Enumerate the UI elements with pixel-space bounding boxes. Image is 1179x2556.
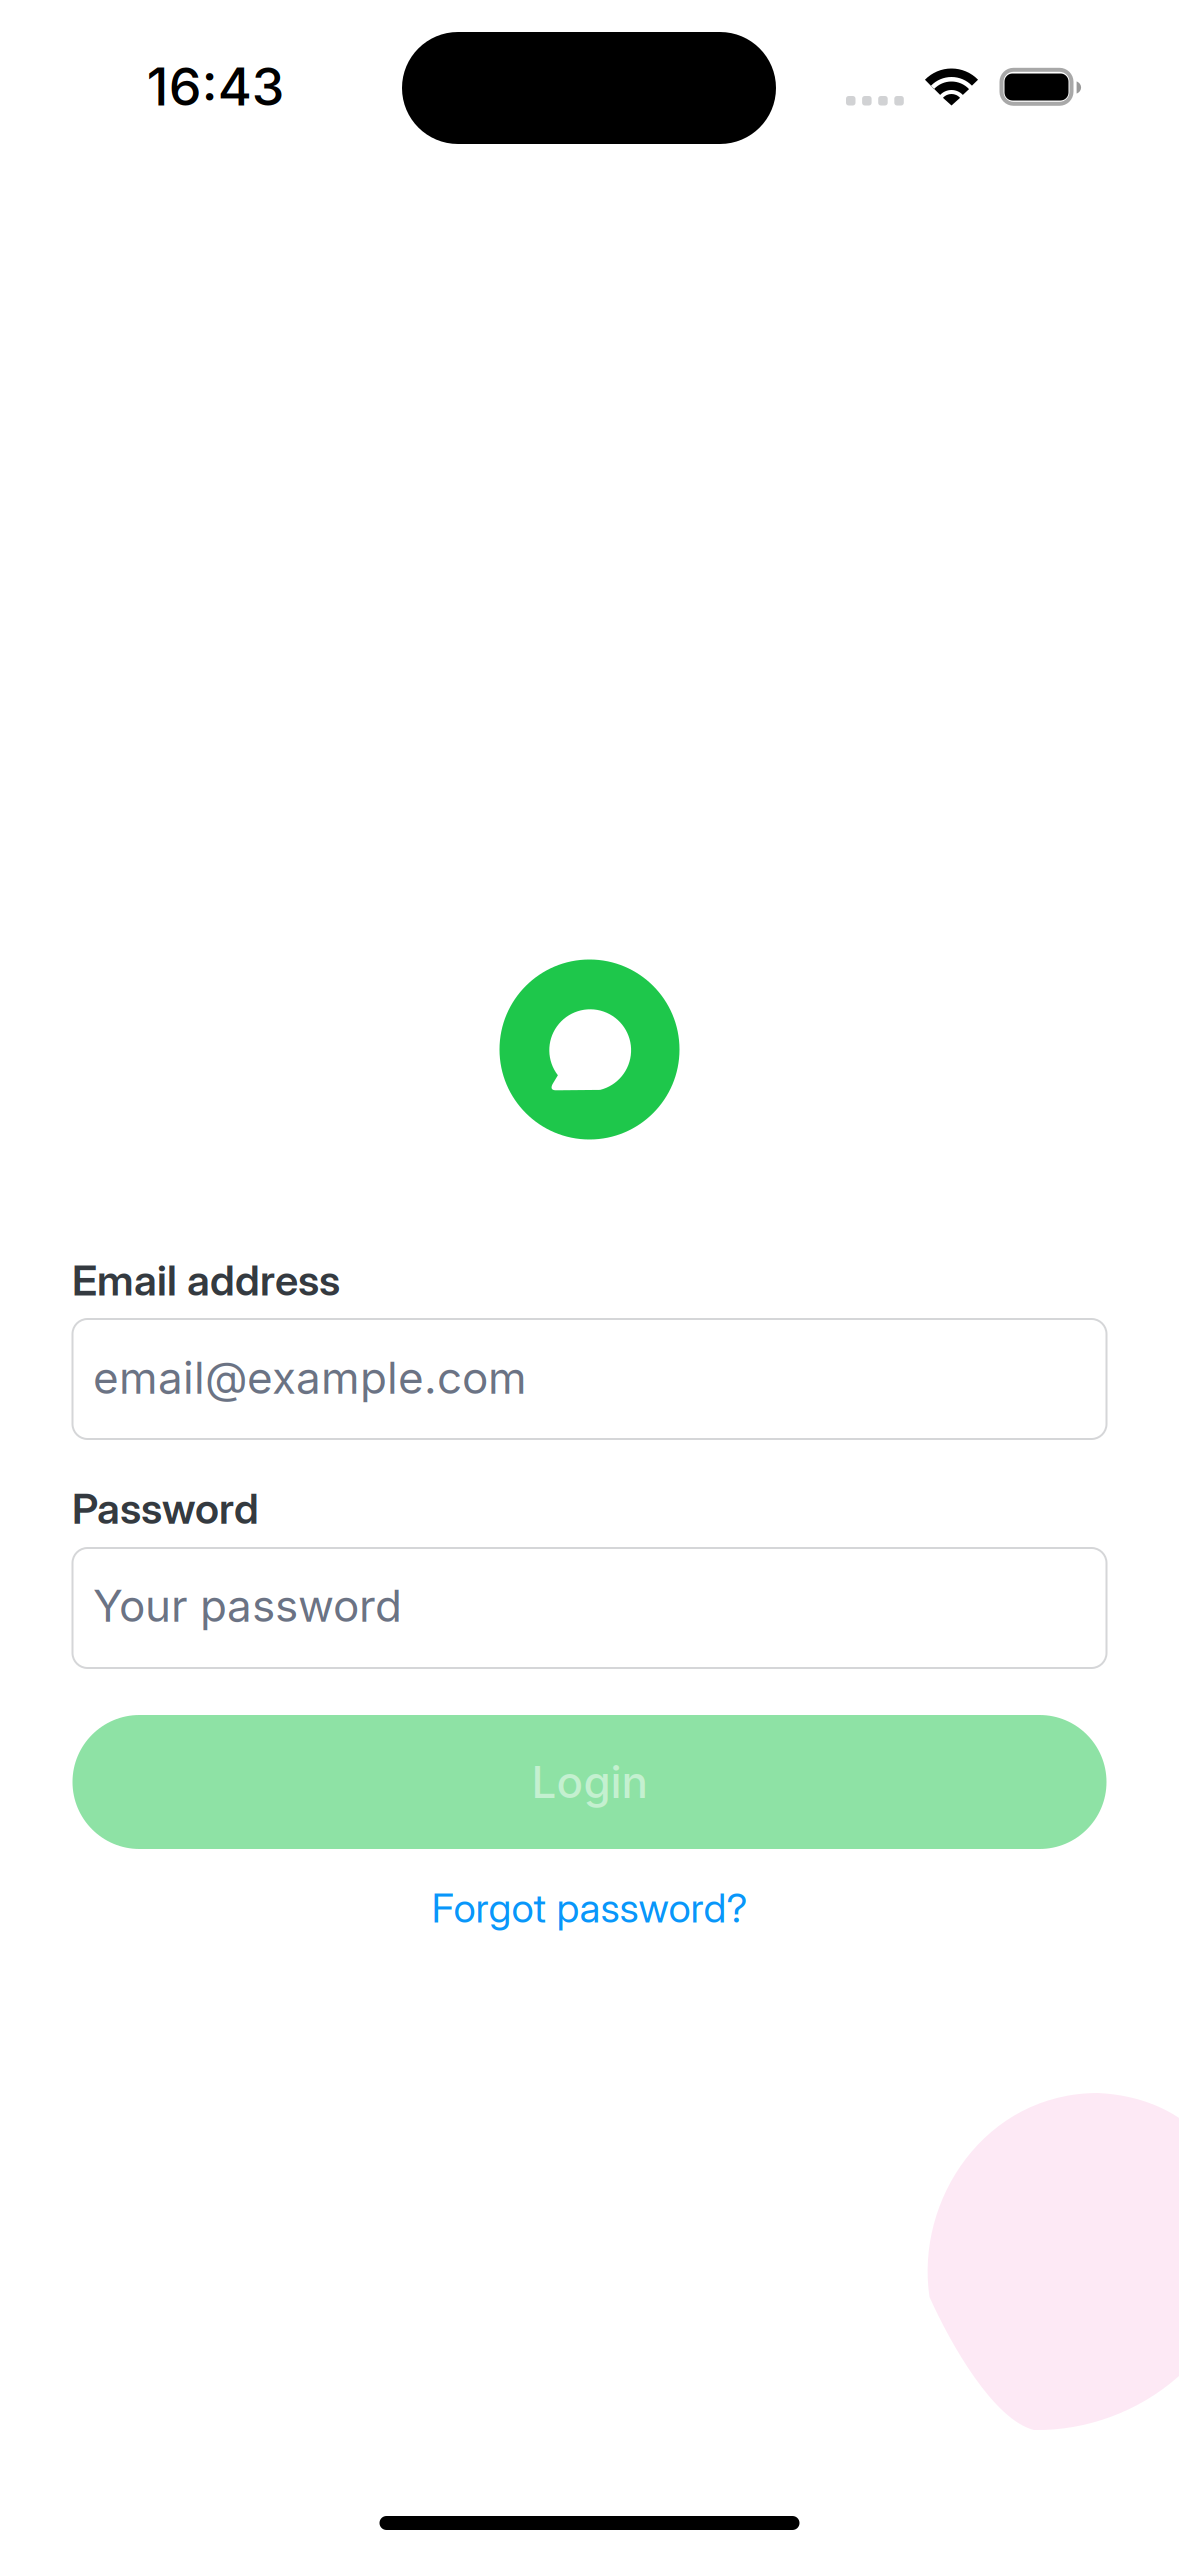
staticText: Your password xyxy=(93,1579,402,1632)
staticText: email@example.com xyxy=(93,1351,527,1404)
staticText: Forgot password? xyxy=(431,1884,747,1932)
staticText: Password xyxy=(72,1483,259,1534)
staticText: Login xyxy=(531,1755,647,1809)
button[interactable]: Forgot password? xyxy=(72,1877,1106,1939)
button[interactable]: Login xyxy=(72,1715,1106,1849)
textField[interactable]: email@example.com xyxy=(72,1319,1106,1439)
staticText: 16:43 xyxy=(147,55,285,118)
secureTextField[interactable]: Your password xyxy=(72,1548,1106,1668)
staticText: Email address xyxy=(72,1255,340,1305)
